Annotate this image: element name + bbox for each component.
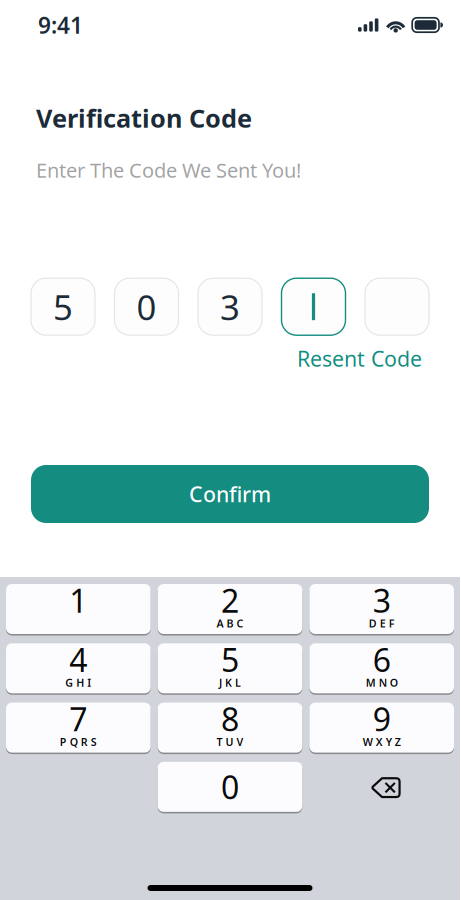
button[interactable]: 6 [309, 643, 454, 695]
staticText: 5 [221, 638, 239, 681]
button[interactable]: 7 [6, 703, 151, 754]
button[interactable]: 9 [309, 703, 454, 754]
staticText: 5 [53, 284, 73, 330]
button[interactable]: 0 [158, 762, 302, 813]
button[interactable]: 2 [158, 584, 302, 635]
button[interactable]: Code digit 0 [114, 278, 178, 335]
staticText: 3 [220, 284, 240, 330]
button[interactable]: Delete [309, 762, 454, 813]
button[interactable]: 5 [158, 643, 302, 695]
staticText: 9 [373, 698, 391, 740]
staticText: 8 [221, 698, 239, 740]
button[interactable]: Code digit, empty [281, 278, 345, 335]
button[interactable]: Code digit, empty [365, 278, 429, 335]
button[interactable]: 8 [158, 703, 302, 754]
staticText: 6 [373, 638, 391, 681]
staticText: M N O [366, 675, 398, 690]
staticText: A B C [216, 616, 243, 630]
staticText: D E F [369, 616, 395, 630]
staticText: P Q R S [60, 735, 97, 749]
staticText: Resent Code [297, 344, 422, 372]
staticText: W X Y Z [363, 735, 401, 749]
button[interactable]: 4 [6, 643, 151, 695]
staticText: 0 [136, 284, 156, 330]
staticText: T U V [216, 735, 243, 749]
staticText: 1 [69, 579, 87, 621]
staticText: 4 [69, 638, 87, 681]
button[interactable]: 1 [6, 584, 151, 635]
button[interactable]: Confirm [0, 465, 460, 523]
staticText: G H I [65, 675, 91, 690]
staticText: J K L [219, 675, 241, 690]
staticText: 9:41 [38, 10, 83, 40]
staticText: 2 [221, 579, 239, 621]
button[interactable]: Code digit 3 [198, 278, 262, 335]
staticText: 3 [373, 579, 391, 621]
button[interactable]: Code digit 5 [31, 278, 95, 335]
staticText: Verification Code [36, 101, 252, 135]
staticText: Confirm [189, 480, 271, 508]
staticText: 0 [221, 766, 239, 808]
button[interactable]: 3 [309, 584, 454, 635]
staticText: 7 [69, 698, 87, 740]
staticText: Enter The Code We Sent You! [36, 157, 301, 183]
button[interactable]: Resent Code [0, 335, 460, 372]
